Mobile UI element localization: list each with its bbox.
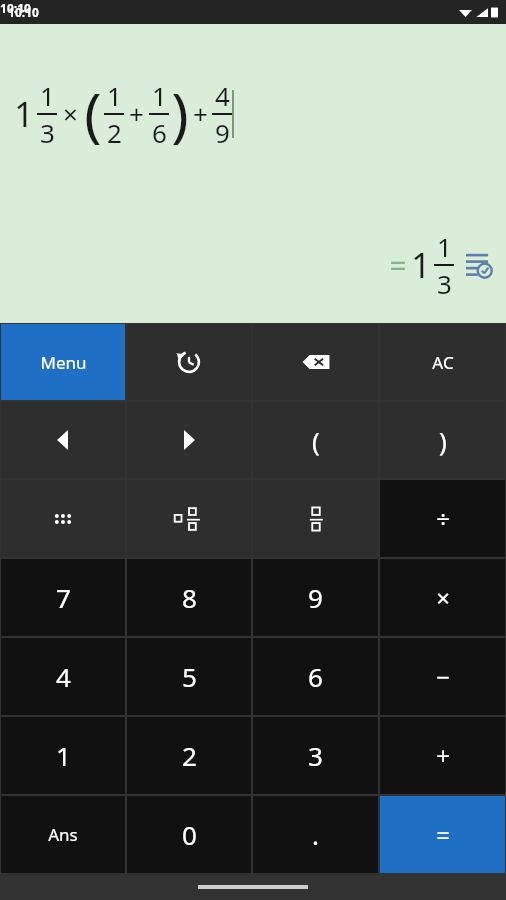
- staticText: ): [171, 74, 189, 153]
- staticText: =: [389, 245, 407, 286]
- button[interactable]: ×: [380, 559, 505, 636]
- button[interactable]: Show steps: [462, 248, 496, 282]
- button[interactable]: 9: [253, 559, 378, 636]
- staticText: 1: [14, 91, 34, 137]
- staticText: (: [312, 423, 320, 458]
- button[interactable]: .: [253, 796, 378, 873]
- button[interactable]: Move left: [1, 402, 125, 478]
- staticText: 1: [411, 242, 431, 288]
- staticText: 7: [56, 580, 71, 615]
- button[interactable]: 5: [127, 638, 251, 715]
- button[interactable]: Fraction: [253, 480, 378, 557]
- staticText: 6: [152, 115, 167, 150]
- button[interactable]: 1: [1, 717, 125, 794]
- staticText: 4: [215, 78, 230, 113]
- staticText: 1: [437, 229, 452, 264]
- button[interactable]: 2: [127, 717, 251, 794]
- staticText: 1: [40, 78, 55, 113]
- staticText: AC: [432, 351, 454, 374]
- staticText: =: [436, 818, 450, 851]
- staticText: 8: [182, 580, 197, 615]
- staticText: 4: [56, 659, 71, 694]
- staticText: .: [312, 817, 319, 852]
- button[interactable]: (: [253, 402, 378, 478]
- button[interactable]: ÷: [380, 480, 505, 557]
- button[interactable]: Backspace: [253, 324, 378, 400]
- button[interactable]: 3: [253, 717, 378, 794]
- staticText: 6: [308, 659, 323, 694]
- button[interactable]: Ans: [1, 796, 125, 873]
- staticText: 3: [40, 115, 55, 150]
- staticText: ×: [63, 96, 78, 131]
- button[interactable]: +: [380, 717, 505, 794]
- button[interactable]: ): [380, 402, 505, 478]
- staticText: 10:10: [8, 4, 39, 20]
- button[interactable]: AC: [380, 324, 505, 400]
- button[interactable]: 0: [127, 796, 251, 873]
- button[interactable]: Move right: [127, 402, 251, 478]
- staticText: 0: [182, 817, 197, 852]
- staticText: 5: [182, 659, 197, 694]
- staticText: +: [129, 96, 144, 131]
- button[interactable]: Mixed fraction: [127, 480, 251, 557]
- staticText: 10:10: [0, 0, 31, 16]
- staticText: 3: [437, 266, 452, 301]
- staticText: ): [439, 423, 447, 458]
- staticText: 3: [308, 738, 323, 773]
- button[interactable]: −: [380, 638, 505, 715]
- staticText: +: [436, 739, 450, 772]
- staticText: Menu: [40, 351, 87, 374]
- button[interactable]: =: [380, 796, 505, 873]
- button[interactable]: 8: [127, 559, 251, 636]
- staticText: −: [436, 660, 450, 693]
- staticText: ÷: [436, 502, 450, 535]
- staticText: 2: [107, 115, 122, 150]
- button[interactable]: Menu: [1, 324, 125, 400]
- button[interactable]: 4: [1, 638, 125, 715]
- staticText: (: [84, 74, 102, 153]
- button[interactable]: 6: [253, 638, 378, 715]
- staticText: 1: [107, 78, 122, 113]
- button[interactable]: 7: [1, 559, 125, 636]
- staticText: 2: [182, 738, 197, 773]
- staticText: 1: [56, 738, 71, 773]
- staticText: Ans: [48, 823, 78, 846]
- staticText: 9: [215, 115, 230, 150]
- button[interactable]: History: [127, 324, 251, 400]
- staticText: 9: [308, 580, 323, 615]
- staticText: 1: [152, 78, 167, 113]
- staticText: +: [193, 96, 208, 131]
- button[interactable]: More: [1, 480, 125, 557]
- staticText: ×: [436, 581, 450, 614]
